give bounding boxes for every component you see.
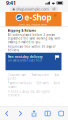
staticText: Customer care · Track my order · Size gu… [7, 73, 59, 80]
staticText: e-Shop [24, 12, 51, 23]
staticText: Returns are free within 30 days of deliv… [7, 45, 55, 52]
staticText: on every order over $50 [8, 59, 42, 62]
staticText: Free next-day delivery [8, 55, 43, 59]
staticText: All orders placed before 2 pm are dispat… [7, 33, 60, 44]
staticText: © 2024 e-Shop Ltd. All rights reserved. [7, 90, 49, 97]
staticText: shop.example.com [16, 6, 49, 12]
button[interactable]: Bookmarks [41, 107, 54, 120]
button[interactable]: Tabs [54, 107, 68, 120]
staticText: Shipping & Returns [7, 29, 35, 32]
button[interactable]: Forward [14, 107, 27, 120]
staticText: OFFICIAL ONLINE SHOP [19, 23, 48, 26]
button[interactable]: Share [27, 107, 41, 120]
button[interactable]: Back [0, 107, 14, 120]
staticText: Payment methods · Gift cards · Store loc… [7, 81, 60, 89]
staticText: 9:41 [6, 0, 16, 7]
button[interactable]: Free next-day delivery [5, 53, 61, 70]
